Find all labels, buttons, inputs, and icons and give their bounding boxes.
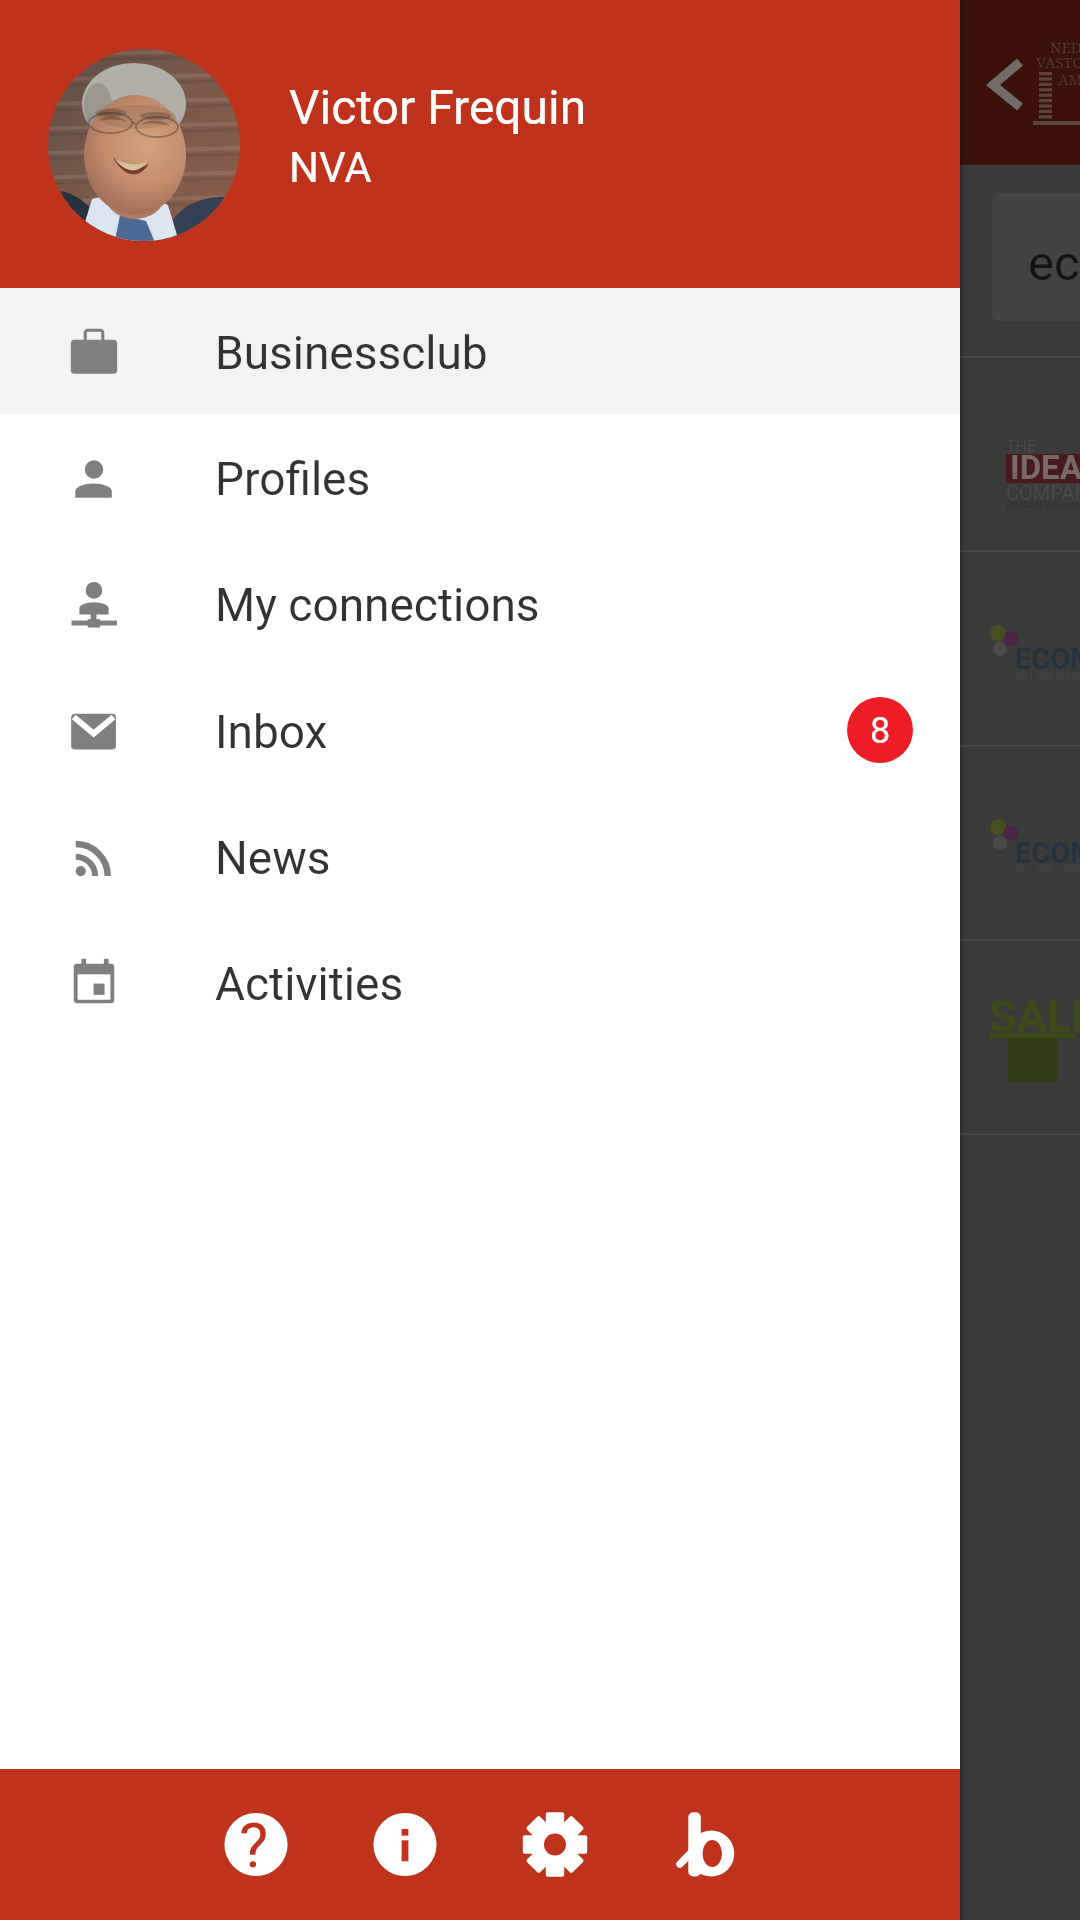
button[interactable]: Businessclub: [0, 288, 960, 414]
staticText: ECOM: [1015, 836, 1080, 870]
button[interactable]: My connections: [0, 540, 960, 666]
staticText: My connections: [215, 578, 540, 632]
button[interactable]: Branding: [629, 1769, 779, 1920]
staticText: VASTGO: [1036, 52, 1080, 72]
staticText: SALES: [989, 990, 1080, 1043]
staticText: IDEAS: [1010, 448, 1080, 487]
staticText: Activities: [215, 957, 404, 1011]
button[interactable]: Information: [330, 1769, 480, 1920]
staticText: THE: [1006, 437, 1037, 456]
staticText: News: [215, 831, 331, 885]
button[interactable]: Help: [181, 1769, 331, 1920]
staticText: ?: [239, 1809, 269, 1882]
staticText: Victor Frequin: [289, 79, 587, 135]
staticText: DOTCOM Projects B.V.: [1006, 500, 1080, 511]
staticText: 8: [870, 710, 891, 752]
staticText: COMPANY: [1006, 481, 1080, 504]
staticText: AMS: [1058, 69, 1080, 89]
button[interactable]: News: [0, 793, 960, 919]
staticText: NED: [1050, 37, 1080, 57]
button[interactable]: Victor Frequin: [0, 0, 960, 288]
button[interactable]: Inbox: [0, 667, 960, 793]
button[interactable]: Profiles: [0, 414, 960, 540]
staticText: NVA: [289, 143, 372, 192]
staticText: Inbox: [215, 705, 328, 759]
staticText: Profiles: [215, 452, 371, 506]
button[interactable]: Activities: [0, 919, 960, 1045]
staticText: ec: [1028, 235, 1080, 292]
button[interactable]: Settings: [480, 1769, 630, 1920]
staticText: Businessclub: [215, 326, 488, 380]
staticText: ECOM: [1015, 642, 1080, 676]
